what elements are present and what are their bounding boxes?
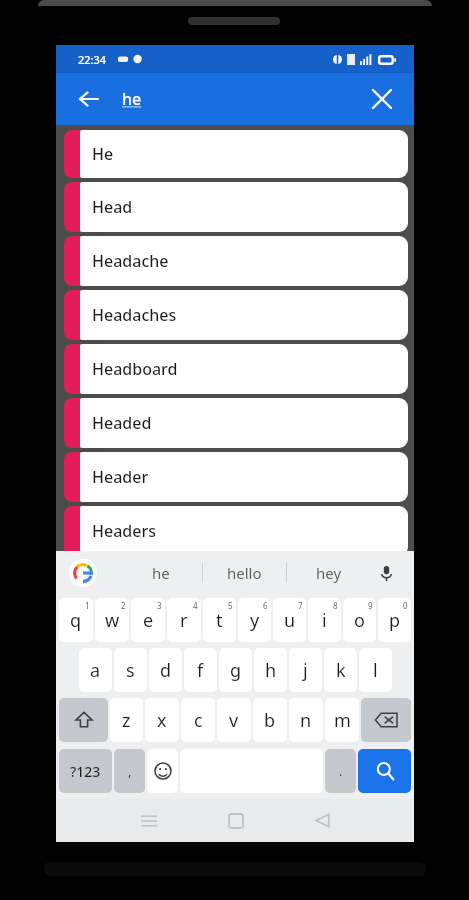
- button[interactable]: y: [238, 598, 271, 642]
- button[interactable]: Headaches: [64, 290, 408, 340]
- button[interactable]: Header: [64, 452, 408, 502]
- staticText: l: [373, 658, 378, 683]
- button[interactable]: b: [253, 698, 287, 742]
- button[interactable]: m: [325, 698, 359, 742]
- staticText: a: [90, 658, 101, 683]
- staticText: 8: [333, 600, 338, 611]
- staticText: 1: [85, 600, 90, 611]
- button[interactable]: .: [325, 749, 356, 793]
- staticText: 4: [193, 600, 198, 611]
- staticText: Headache: [92, 250, 169, 272]
- button[interactable]: z: [110, 698, 143, 742]
- staticText: Headed: [92, 412, 152, 434]
- button[interactable]: Emoji: [147, 749, 178, 793]
- staticText: 7: [298, 600, 303, 611]
- button[interactable]: j: [289, 648, 322, 692]
- staticText: d: [160, 658, 172, 683]
- button[interactable]: s: [114, 648, 147, 692]
- button[interactable]: Head: [64, 182, 408, 232]
- button[interactable]: he: [120, 551, 202, 595]
- staticText: o: [354, 608, 365, 633]
- button[interactable]: d: [149, 648, 182, 692]
- button[interactable]: Voice input: [372, 559, 400, 587]
- button[interactable]: n: [289, 698, 323, 742]
- staticText: Headboard: [92, 358, 178, 380]
- button[interactable]: Shift: [59, 698, 108, 742]
- staticText: 3: [157, 600, 162, 611]
- staticText: j: [303, 658, 308, 683]
- button[interactable]: Google: [68, 558, 98, 588]
- staticText: n: [300, 708, 312, 733]
- staticText: 6: [263, 600, 268, 611]
- staticText: f: [197, 658, 204, 683]
- staticText: x: [157, 708, 167, 733]
- staticText: .: [339, 762, 343, 780]
- button[interactable]: u: [273, 598, 306, 642]
- button[interactable]: w: [95, 598, 129, 642]
- staticText: hello: [227, 563, 262, 583]
- staticText: e: [143, 608, 154, 633]
- staticText: ?123: [70, 762, 101, 781]
- button[interactable]: Home: [192, 799, 279, 842]
- button[interactable]: ,: [114, 749, 145, 793]
- staticText: y: [250, 608, 260, 633]
- button[interactable]: i: [308, 598, 341, 642]
- staticText: z: [122, 708, 131, 733]
- button[interactable]: h: [254, 648, 287, 692]
- button[interactable]: ?123: [59, 749, 112, 793]
- button[interactable]: e: [131, 598, 165, 642]
- button[interactable]: Clear search: [362, 79, 402, 119]
- staticText: k: [336, 658, 346, 683]
- staticText: u: [284, 608, 296, 633]
- staticText: Header: [92, 466, 149, 488]
- button[interactable]: hey: [287, 551, 370, 595]
- staticText: 5: [228, 600, 233, 611]
- staticText: t: [216, 608, 223, 633]
- button[interactable]: v: [217, 698, 251, 742]
- staticText: Headers: [92, 520, 156, 542]
- button[interactable]: Headed: [64, 398, 408, 448]
- staticText: He: [92, 143, 114, 165]
- button[interactable]: r: [167, 598, 201, 642]
- button[interactable]: l: [359, 648, 392, 692]
- button[interactable]: hello: [203, 551, 286, 595]
- button[interactable]: g: [219, 648, 252, 692]
- staticText: c: [194, 708, 203, 733]
- staticText: w: [105, 608, 120, 633]
- button[interactable]: Back: [68, 79, 108, 119]
- button[interactable]: Headers: [64, 506, 408, 556]
- staticText: q: [70, 608, 82, 633]
- staticText: Head: [92, 196, 133, 218]
- button[interactable]: he: [122, 79, 352, 119]
- staticText: g: [230, 658, 242, 683]
- button[interactable]: Headache: [64, 236, 408, 286]
- button[interactable]: k: [324, 648, 357, 692]
- staticText: 2: [121, 600, 126, 611]
- staticText: he: [122, 88, 142, 110]
- button[interactable]: Search: [358, 749, 411, 793]
- button[interactable]: x: [145, 698, 179, 742]
- button[interactable]: p: [378, 598, 411, 642]
- button[interactable]: f: [184, 648, 217, 692]
- button[interactable]: t: [203, 598, 236, 642]
- staticText: v: [229, 708, 239, 733]
- button[interactable]: Back: [279, 799, 366, 842]
- button[interactable]: q: [59, 598, 93, 642]
- staticText: hey: [316, 563, 342, 583]
- button[interactable]: o: [343, 598, 376, 642]
- button[interactable]: a: [79, 648, 112, 692]
- staticText: ,: [128, 762, 132, 780]
- button[interactable]: Headboard: [64, 344, 408, 394]
- staticText: p: [389, 608, 401, 633]
- staticText: 9: [368, 600, 373, 611]
- staticText: Headaches: [92, 304, 177, 326]
- button[interactable]: Recents: [105, 799, 192, 842]
- button[interactable]: Backspace: [361, 698, 411, 742]
- staticText: i: [322, 608, 327, 633]
- button[interactable]: He: [64, 130, 408, 178]
- staticText: h: [265, 658, 277, 683]
- button[interactable]: c: [181, 698, 215, 742]
- staticText: r: [180, 608, 188, 633]
- staticText: b: [264, 708, 276, 733]
